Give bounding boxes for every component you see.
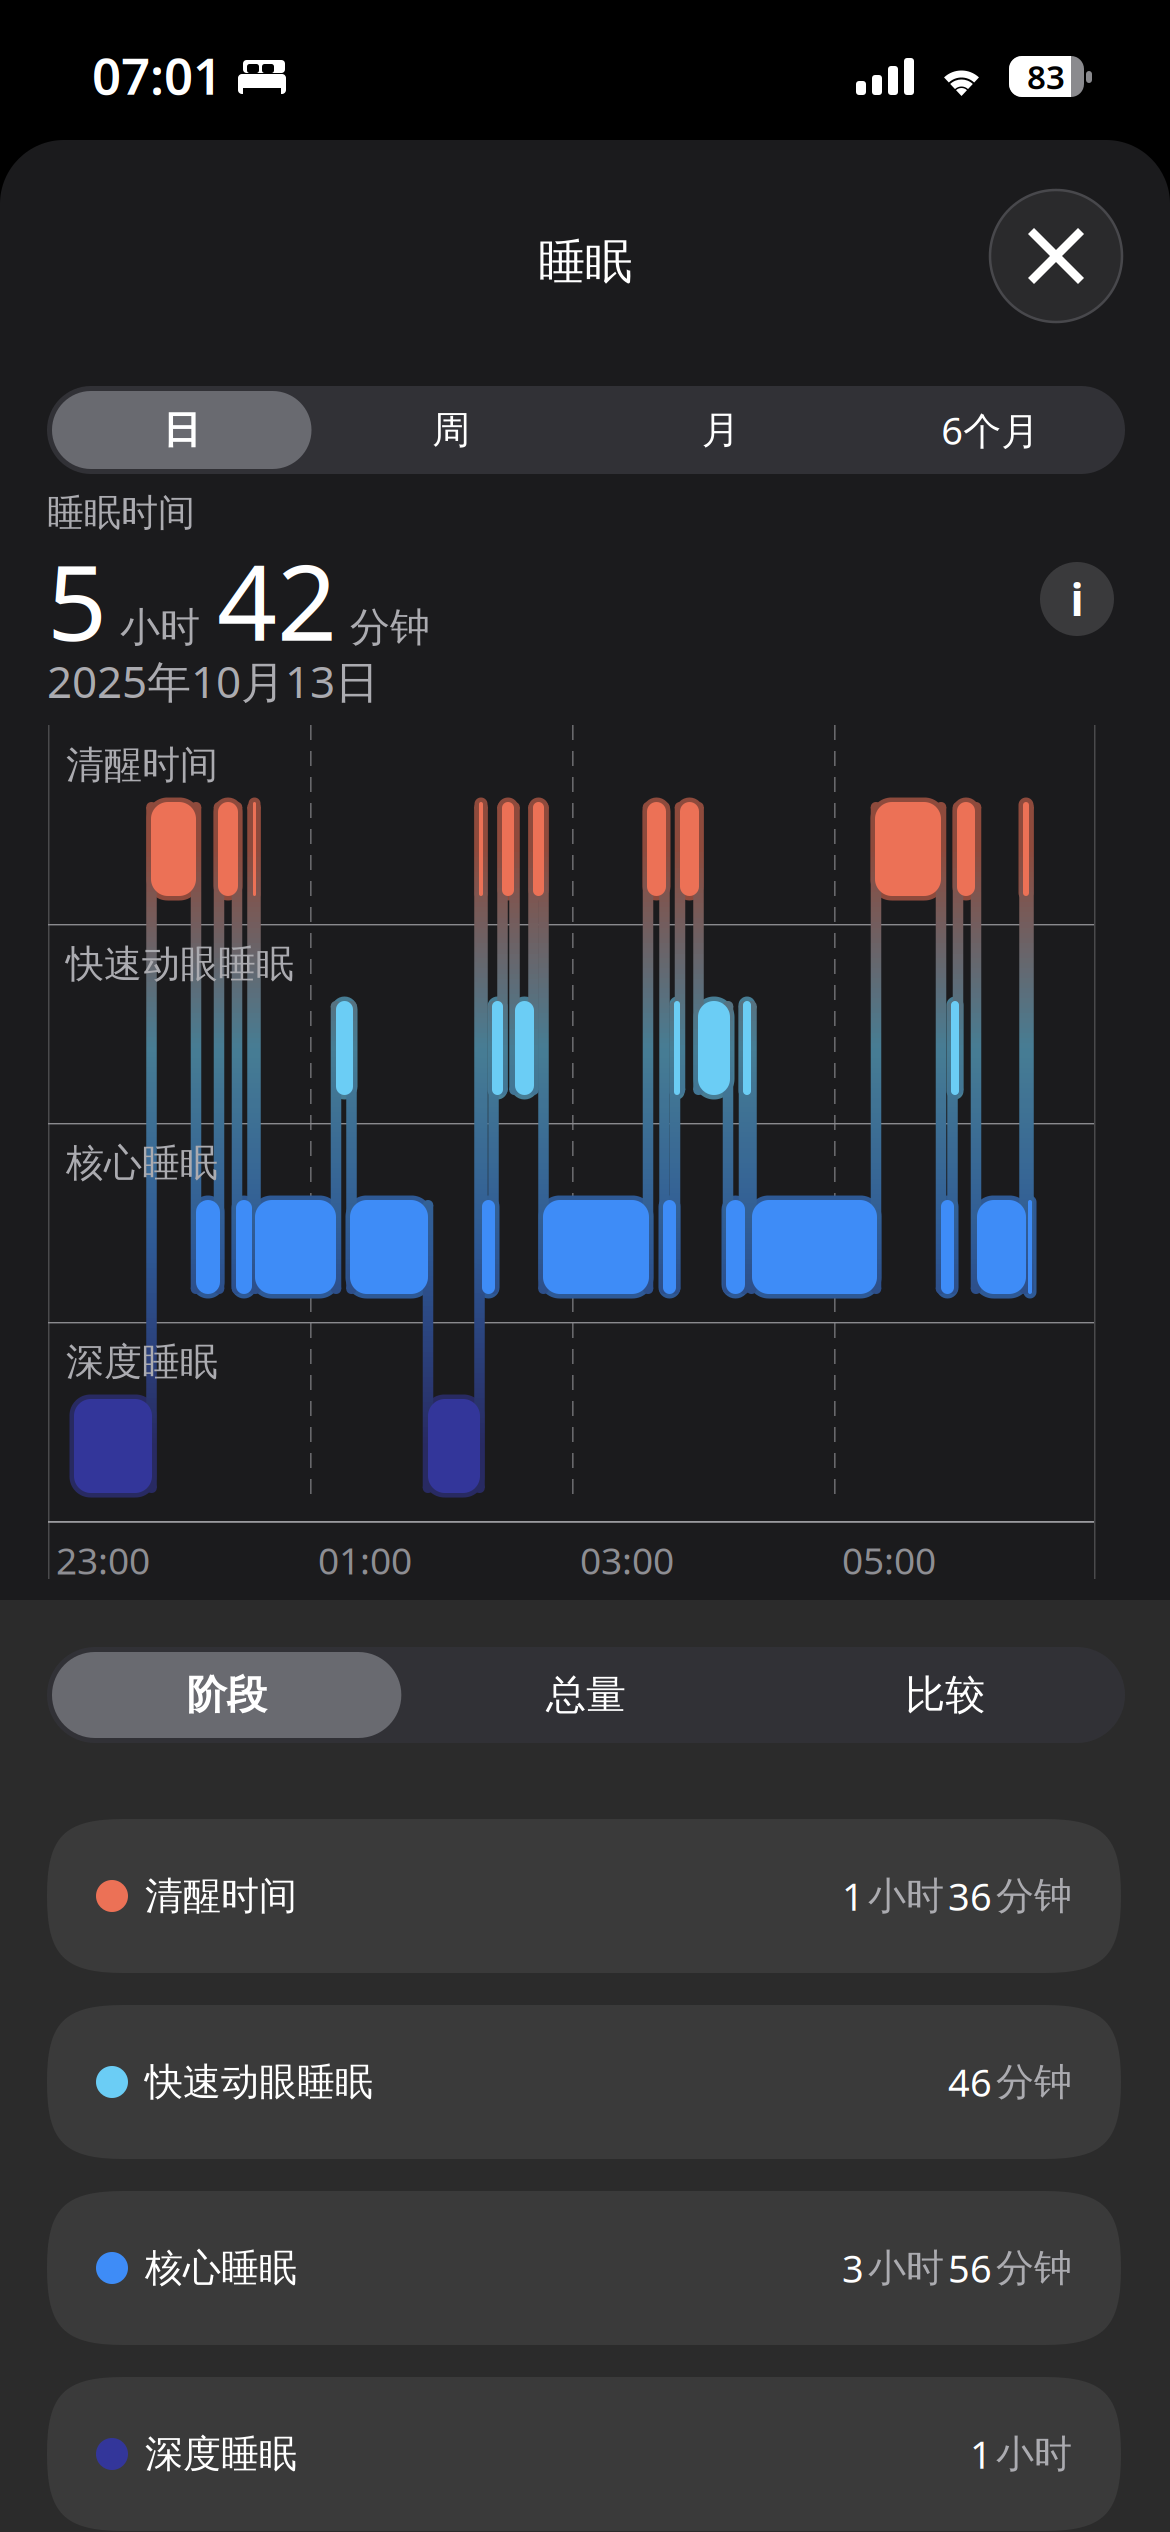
staticText: 23:00 <box>56 1535 150 1585</box>
staticText: 分钟 <box>996 2244 1072 2292</box>
button[interactable]: 日 <box>47 386 316 474</box>
button[interactable]: 信息 <box>1040 562 1114 636</box>
staticText: 36 <box>948 1870 992 1922</box>
staticText: 睡眠 <box>538 232 632 292</box>
staticText: 快速动眼睡眠 <box>66 940 294 988</box>
button[interactable]: 核心睡眠 <box>47 2191 1121 2345</box>
staticText: 1 <box>970 2428 992 2480</box>
staticText: 分钟 <box>996 2058 1072 2106</box>
button[interactable]: 深度睡眠 <box>47 2377 1121 2531</box>
staticText: 07:01 <box>92 40 222 110</box>
staticText: 小时 <box>868 2244 944 2292</box>
staticText: 46 <box>948 2056 992 2108</box>
staticText: 分钟 <box>996 1872 1072 1920</box>
staticText: 深度睡眠 <box>66 1338 218 1386</box>
staticText: 小时 <box>996 2430 1072 2478</box>
staticText: 1 <box>842 1870 864 1922</box>
staticText: 阶段 <box>187 1670 267 1720</box>
staticText: 总量 <box>546 1670 626 1720</box>
button[interactable]: 6个月 <box>855 386 1125 474</box>
staticText: 比较 <box>905 1670 985 1720</box>
staticText: 5 <box>47 528 107 671</box>
staticText: 清醒时间 <box>66 741 218 789</box>
button[interactable]: 快速动眼睡眠 <box>47 2005 1121 2159</box>
staticText: 42 <box>217 528 337 671</box>
staticText: 快速动眼睡眠 <box>145 2058 373 2106</box>
staticText: 睡眠时间 <box>47 490 195 536</box>
staticText: 3 <box>842 2242 864 2294</box>
staticText: 周 <box>432 406 470 454</box>
staticText: 分钟 <box>350 602 430 653</box>
button[interactable]: 关闭 <box>990 190 1122 322</box>
staticText: 小时 <box>120 602 200 653</box>
staticText: 日 <box>163 406 201 454</box>
staticText: 清醒时间 <box>145 1872 297 1920</box>
staticText: 83 <box>1027 54 1065 99</box>
button[interactable]: 总量 <box>406 1647 766 1743</box>
staticText: 6个月 <box>941 404 1039 456</box>
staticText: 月 <box>702 406 740 454</box>
button[interactable]: 清醒时间 <box>47 1819 1121 1973</box>
staticText: 03:00 <box>580 1535 674 1585</box>
staticText: 小时 <box>868 1872 944 1920</box>
staticText: 2025年10月13日 <box>47 651 379 711</box>
button[interactable]: 比较 <box>766 1647 1125 1743</box>
staticText: 深度睡眠 <box>145 2430 297 2478</box>
staticText: i <box>1070 569 1083 629</box>
button[interactable]: 月 <box>586 386 855 474</box>
staticText: 核心睡眠 <box>66 1139 218 1187</box>
button[interactable]: 阶段 <box>47 1647 406 1743</box>
staticText: 01:00 <box>318 1535 412 1585</box>
staticText: 05:00 <box>842 1535 936 1585</box>
staticText: 56 <box>948 2242 992 2294</box>
button[interactable]: 周 <box>316 386 586 474</box>
staticText: 核心睡眠 <box>145 2244 297 2292</box>
